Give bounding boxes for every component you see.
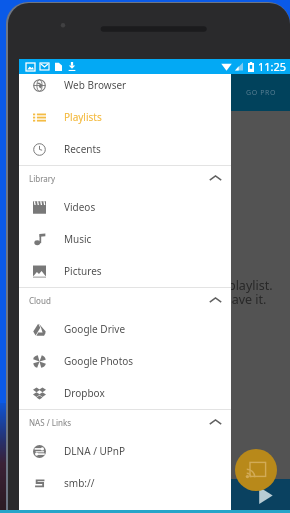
staticText: Library — [29, 173, 56, 184]
staticText: Dropbox — [64, 386, 105, 400]
staticText: Then save it. — [193, 291, 267, 308]
staticText: Google Drive — [64, 322, 126, 336]
button[interactable]: Recents — [19, 133, 231, 165]
button[interactable]: Dropbox — [19, 377, 231, 409]
button[interactable]: Play — [252, 482, 278, 508]
button[interactable]: DLNA / UPnP — [19, 435, 231, 467]
staticText: NAS / Links — [29, 417, 72, 428]
button[interactable]: Pictures — [19, 255, 231, 287]
button[interactable]: NAS / Links — [19, 410, 231, 435]
button[interactable]: Playlists — [19, 101, 231, 133]
staticText: Google Photos — [64, 354, 134, 368]
staticText: Music — [64, 232, 92, 246]
staticText: Cloud — [29, 295, 51, 306]
button[interactable]: GO PRO — [241, 85, 282, 101]
button[interactable]: Music — [19, 223, 231, 255]
staticText: Videos — [64, 200, 96, 214]
staticText: GO PRO — [246, 88, 277, 98]
staticText: Playlists — [64, 110, 102, 124]
staticText: 11:25 — [258, 59, 287, 74]
button[interactable]: Videos — [19, 191, 231, 223]
staticText: Web Browser — [64, 78, 127, 92]
staticText: Pictures — [64, 264, 102, 278]
button[interactable]: Web Browser — [19, 74, 231, 101]
button[interactable]: Google Drive — [19, 313, 231, 345]
button[interactable]: smb:// — [19, 467, 231, 499]
staticText: Recents — [64, 142, 101, 156]
button[interactable]: Library — [19, 166, 231, 191]
button[interactable]: Google Photos — [19, 345, 231, 377]
staticText: 11:25 — [258, 59, 287, 74]
button[interactable]: Cast — [235, 449, 277, 491]
button[interactable]: Cloud — [19, 288, 231, 313]
staticText: smb:// — [64, 476, 95, 490]
staticText: Create a playlist. — [176, 277, 273, 294]
staticText: DLNA / UPnP — [64, 444, 126, 458]
